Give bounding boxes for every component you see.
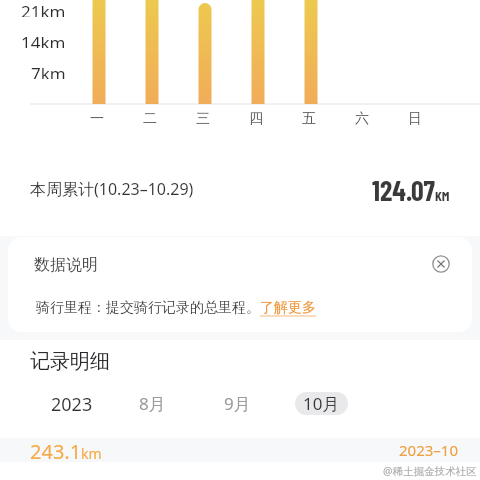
staticText: 21km (21, 0, 66, 17)
staticText: 9月 (224, 392, 251, 415)
staticText: 五 (302, 110, 316, 126)
staticText: 10月 (303, 392, 340, 415)
button[interactable]: 了解更多 (260, 299, 316, 317)
button[interactable]: 9月 (209, 392, 265, 415)
staticText: 二 (143, 110, 157, 126)
staticText: 骑行里程：提交骑行记录的总里程。 (36, 299, 260, 317)
staticText: 7km (31, 62, 66, 79)
staticText: 日 (408, 110, 422, 126)
staticText: 124.07KM (372, 173, 450, 203)
staticText: 243.1km (30, 438, 102, 462)
staticText: 8月 (139, 392, 166, 415)
button[interactable] (425, 248, 457, 280)
button[interactable]: 10月 (295, 392, 348, 415)
staticText: 数据说明 (34, 255, 98, 275)
staticText: 一 (90, 110, 104, 126)
staticText: 本周累计(10.23–10.29) (30, 178, 194, 198)
button[interactable]: 8月 (124, 392, 180, 415)
staticText: 2023–10 (399, 440, 458, 460)
button[interactable]: 2023 (44, 392, 100, 415)
staticText: 2023 (51, 392, 93, 415)
staticText: @稀土掘金技术社区 (383, 464, 477, 478)
staticText: 四 (249, 110, 263, 126)
staticText: 14km (21, 31, 66, 48)
staticText: 记录明细 (30, 349, 110, 373)
staticText: 三 (196, 110, 210, 126)
staticText: 六 (355, 110, 369, 126)
